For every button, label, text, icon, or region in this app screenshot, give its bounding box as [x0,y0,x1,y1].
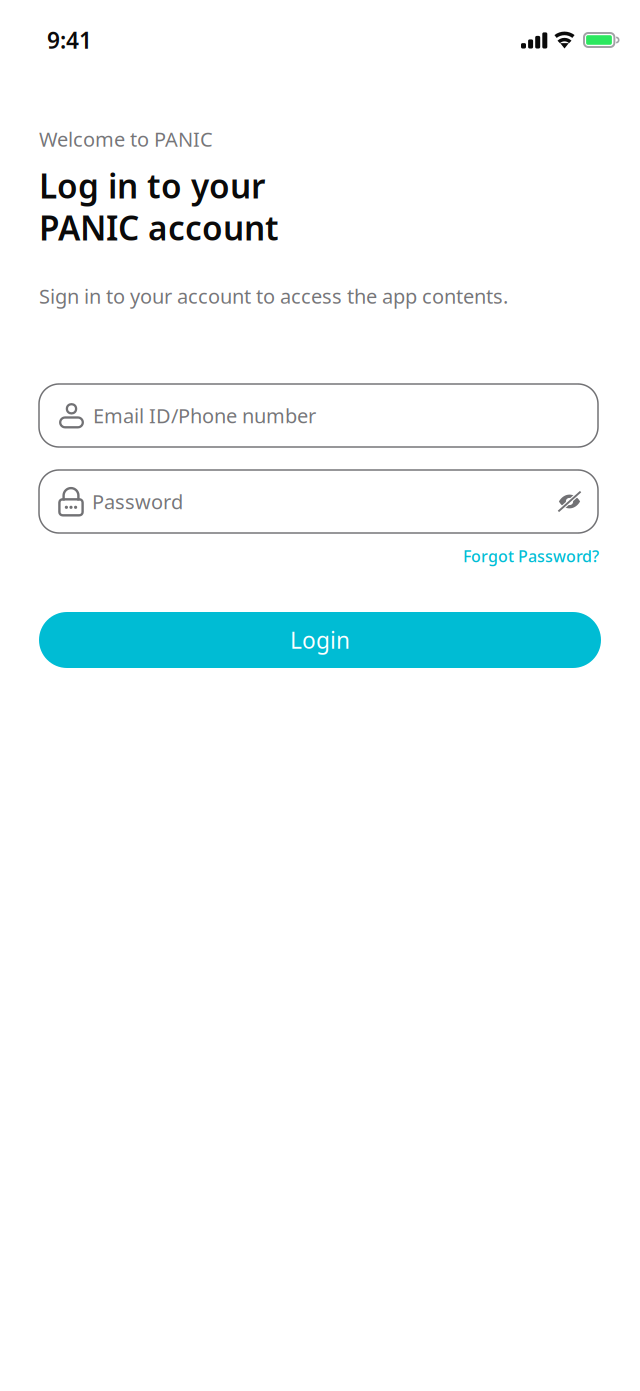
staticText: Forgot Password? [463,545,599,567]
staticText: Sign in to your account to access the ap… [39,283,508,309]
staticText: Email ID/Phone number [93,402,316,429]
staticText: Log in to your [39,163,265,208]
button[interactable]: Email ID/Phone number [39,384,598,447]
staticText: Welcome to PANIC [39,126,213,152]
staticText: Login [290,625,350,655]
staticText: Password [92,488,183,515]
button[interactable]: Show password [558,491,581,512]
button[interactable]: Password [39,470,598,533]
staticText: PANIC account [39,205,279,250]
button[interactable]: Forgot Password? [463,545,599,567]
staticText: 9:41 [47,25,92,55]
button[interactable]: Login [39,612,601,668]
